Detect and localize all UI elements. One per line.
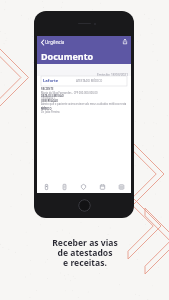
staticText: DATA DE EMISSÃO [41, 94, 64, 98]
button[interactable]: Menu [112, 181, 131, 193]
staticText: OBSERVAÇÃO [41, 99, 59, 103]
button[interactable]: Carteirinha [37, 181, 55, 193]
staticText: Atesto que o paciente acima esteve sob m… [41, 102, 127, 110]
staticText: Dr. João Pereira [41, 110, 60, 114]
button[interactable]: Saúde [74, 181, 93, 193]
staticText: PACIENTE [41, 87, 54, 91]
staticText: Laforte [43, 78, 59, 84]
staticText: Maria da Silva Fernandes - CPF 000.000.0… [41, 91, 98, 95]
button[interactable]: Agenda [93, 181, 112, 193]
staticText: ATESTADO MÉDICO [76, 79, 103, 83]
staticText: Receber as vias de atestados e receitas. [52, 237, 118, 268]
staticText: Urgência [45, 39, 65, 45]
staticText: MÉDICO [41, 107, 52, 111]
button[interactable]: Urgência [41, 39, 65, 45]
staticText: Emissão: 18/03/2021 [97, 73, 128, 77]
button[interactable]: Share [121, 38, 128, 45]
staticText: Documento [41, 50, 94, 62]
staticText: 18/03/2021 [41, 96, 55, 100]
button[interactable]: Guias [55, 181, 74, 193]
